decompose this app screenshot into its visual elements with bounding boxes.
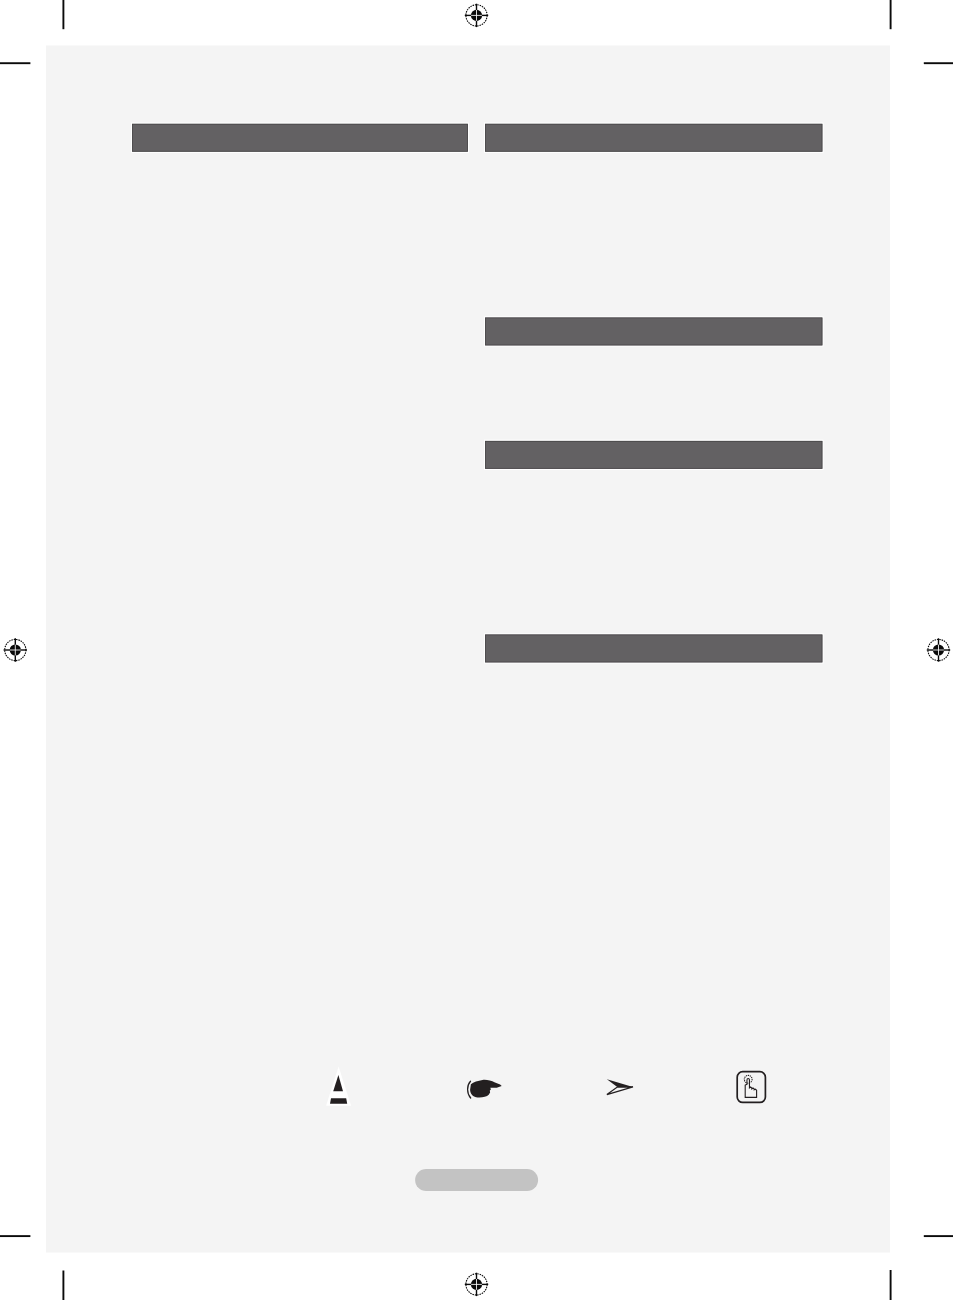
- button[interactable]: Section heading: [485, 124, 822, 152]
- button[interactable]: Point to note: [466, 1076, 504, 1100]
- button[interactable]: Section heading: [485, 441, 822, 469]
- button[interactable]: Section heading: [132, 124, 468, 152]
- button[interactable]: Continue: [415, 1169, 538, 1191]
- button[interactable]: Send: [604, 1076, 636, 1098]
- button[interactable]: Touch gesture: [735, 1069, 768, 1105]
- button[interactable]: Caution: [324, 1064, 354, 1108]
- button[interactable]: Section heading: [485, 318, 822, 346]
- button[interactable]: Section heading: [485, 635, 822, 663]
